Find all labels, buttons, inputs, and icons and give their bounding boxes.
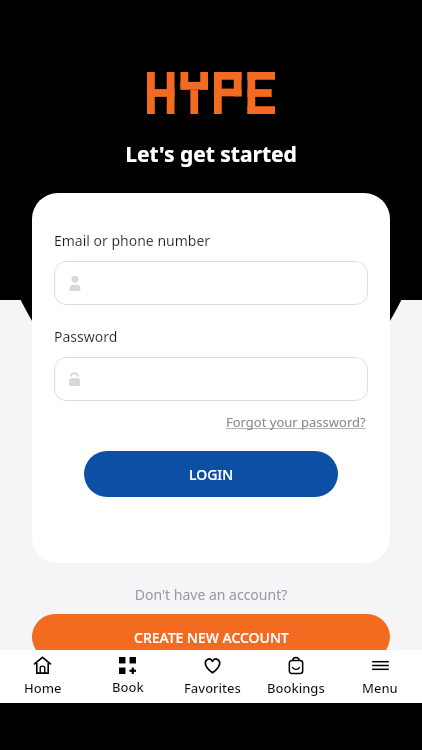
staticText: Home	[24, 679, 62, 697]
button[interactable]: LOGIN	[84, 451, 338, 497]
staticText: Don't have an account?	[0, 585, 422, 604]
staticText: Email or phone number	[54, 231, 211, 250]
button[interactable]: Menu	[338, 652, 422, 701]
other: Book	[119, 657, 136, 674]
other: Bookings	[287, 657, 305, 675]
staticText: Password	[54, 327, 118, 346]
staticText: Let's get started	[0, 140, 422, 169]
button[interactable]	[54, 357, 368, 401]
button[interactable]: Favorites	[170, 652, 254, 701]
staticText: Menu	[362, 679, 398, 697]
other: Menu	[371, 656, 390, 675]
staticText: Favorites	[184, 679, 241, 697]
button[interactable]: Home	[0, 652, 85, 701]
staticText: CREATE NEW ACCOUNT	[134, 628, 289, 647]
button[interactable]: Bookings	[254, 653, 338, 701]
button[interactable]: Forgot your password?	[224, 411, 368, 433]
button[interactable]: Book	[85, 653, 170, 700]
staticText: Bookings	[267, 679, 325, 697]
button[interactable]	[54, 261, 368, 305]
other: Favorites	[203, 656, 222, 675]
other: Home	[33, 656, 52, 675]
button[interactable]: CREATE NEW ACCOUNT	[32, 614, 390, 660]
staticText: Book	[112, 678, 144, 696]
staticText: LOGIN	[189, 465, 234, 484]
other: HYPE logo	[147, 72, 275, 114]
